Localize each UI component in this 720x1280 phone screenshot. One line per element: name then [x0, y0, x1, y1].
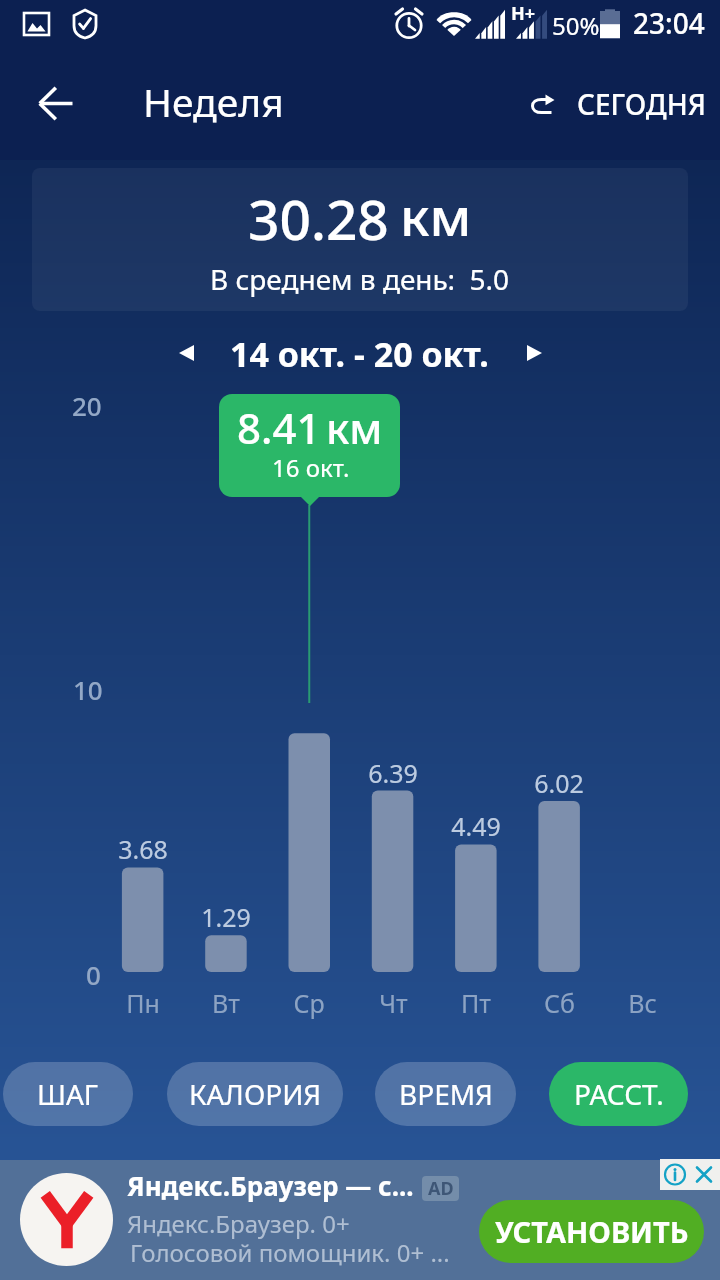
staticText: Чт	[379, 986, 408, 1020]
button[interactable]: ВРЕМЯ	[375, 1062, 516, 1126]
staticText: Яндекс.Браузер — с...	[127, 1168, 414, 1203]
staticText: УСТАНОВИТЬ	[495, 1212, 689, 1251]
staticText: Яндекс.Браузер. 0+	[127, 1207, 350, 1240]
staticText: 1.29	[201, 900, 251, 934]
staticText: 16 окт.	[272, 451, 350, 484]
staticText: ШАГ	[37, 1075, 99, 1113]
staticText: 6.39	[368, 756, 418, 790]
staticText: ВРЕМЯ	[399, 1075, 493, 1113]
button[interactable]: УСТАНОВИТЬ	[479, 1200, 704, 1263]
button[interactable]: Back	[28, 76, 84, 132]
staticText: 14 окт. - 20 окт.	[230, 331, 489, 377]
staticText: 20	[72, 388, 102, 422]
staticText: AD	[428, 1176, 454, 1201]
staticText: СЕГОДНЯ	[577, 85, 706, 123]
staticText: H+	[511, 1, 536, 26]
staticText: Голосовой помощник. 0+ ...	[130, 1236, 450, 1269]
staticText: Вс	[628, 986, 657, 1020]
staticText: Вт	[212, 986, 240, 1020]
staticText: 4.49	[451, 809, 501, 843]
button[interactable]: РАССТ.	[549, 1062, 688, 1126]
staticText: 23:04	[633, 4, 705, 42]
staticText: Пт	[461, 986, 491, 1020]
staticText: 10	[73, 672, 103, 706]
staticText: Сб	[544, 986, 575, 1020]
button[interactable]: Previous week	[165, 330, 211, 376]
staticText: 30.28	[248, 181, 389, 256]
staticText: 8.41	[237, 399, 321, 456]
staticText: 6.02	[534, 766, 584, 800]
staticText: Ср	[293, 986, 325, 1020]
staticText: км	[326, 399, 383, 456]
staticText: Неделя	[143, 75, 284, 128]
button[interactable]	[219, 394, 400, 497]
staticText: В среднем в день: 5.0	[210, 260, 510, 298]
button[interactable]: КАЛОРИЯ	[167, 1062, 343, 1126]
staticText: Пн	[126, 986, 160, 1020]
staticText: км	[400, 179, 472, 251]
button[interactable]: Next week	[510, 330, 556, 376]
button[interactable]: 30.28	[32, 168, 688, 311]
staticText: 50%	[552, 9, 600, 42]
button[interactable]: СЕГОДНЯ	[520, 78, 705, 130]
staticText: РАССТ.	[574, 1075, 664, 1113]
button[interactable]: ШАГ	[3, 1062, 133, 1126]
staticText: КАЛОРИЯ	[189, 1075, 322, 1113]
staticText: 3.68	[118, 832, 168, 866]
staticText: 0	[86, 957, 101, 991]
